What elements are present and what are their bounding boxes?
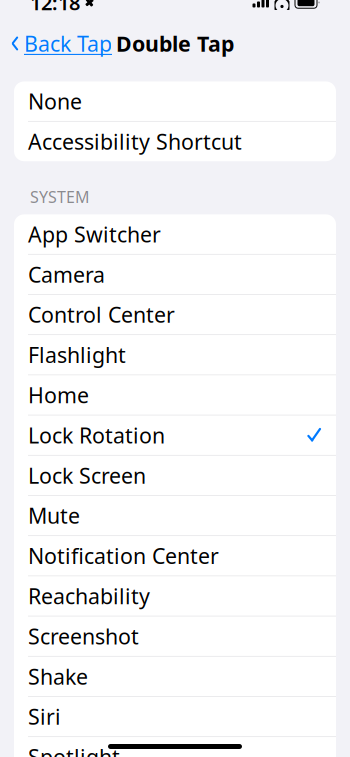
staticText: Lock Rotation xyxy=(28,421,165,449)
staticText: Shake xyxy=(28,662,88,690)
button[interactable]: Accessibility Shortcut xyxy=(14,122,336,161)
button[interactable]: Mute xyxy=(14,496,336,535)
button[interactable]: Siri xyxy=(14,697,336,736)
button[interactable]: Lock Screen xyxy=(14,456,336,495)
staticText: Flashlight xyxy=(28,341,126,369)
button[interactable]: Screenshot xyxy=(14,616,336,656)
button[interactable]: Notification Center xyxy=(14,536,336,575)
staticText: 12:18 xyxy=(30,0,80,16)
button[interactable]: Home indicator xyxy=(108,744,242,749)
staticText: Siri xyxy=(28,702,61,731)
button[interactable]: Lock Rotation xyxy=(14,415,336,455)
button[interactable]: Spotlight xyxy=(14,737,336,757)
staticText: Double Tap xyxy=(116,29,234,58)
staticText: Camera xyxy=(28,260,105,288)
staticText: SYSTEM xyxy=(30,186,90,207)
staticText: Accessibility Shortcut xyxy=(28,127,242,156)
button[interactable]: Camera xyxy=(14,255,336,294)
staticText: None xyxy=(28,87,82,115)
staticText: Notification Center xyxy=(28,542,219,570)
button[interactable]: Flashlight xyxy=(14,335,336,374)
button[interactable]: Control Center xyxy=(14,295,336,334)
staticText: Reachability xyxy=(28,582,150,610)
button[interactable]: Reachability xyxy=(14,576,336,616)
staticText: Control Center xyxy=(28,300,175,329)
staticText: Back Tap xyxy=(24,29,112,58)
button[interactable]: App Switcher xyxy=(14,214,336,254)
button[interactable]: Home xyxy=(14,375,336,415)
staticText: Lock Screen xyxy=(28,461,146,489)
staticText: Mute xyxy=(28,501,80,530)
staticText: Screenshot xyxy=(28,622,139,650)
button[interactable]: Back Tap xyxy=(8,23,114,64)
staticText: App Switcher xyxy=(28,220,161,248)
staticText: Home xyxy=(28,381,89,409)
button[interactable]: Shake xyxy=(14,657,336,696)
button[interactable]: None xyxy=(14,81,336,121)
staticText: Spotlight xyxy=(28,743,120,757)
